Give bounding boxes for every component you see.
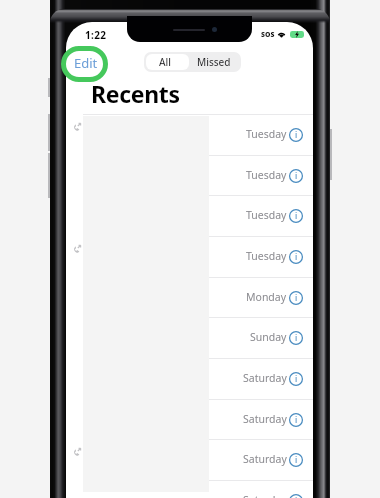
staticText: SOS [261,30,275,39]
staticText: i [295,373,298,385]
staticText: Saturday [243,412,287,426]
staticText: i [295,170,298,182]
staticText: 1:22 [85,28,107,42]
button[interactable]: Tuesday [66,155,313,196]
other: Call details [289,494,303,498]
button[interactable]: Saturday [66,480,313,498]
staticText: Edit [74,54,98,72]
staticText: i [295,292,298,304]
staticText: Saturday [243,452,287,466]
staticText: Monday [246,290,287,304]
button[interactable]: Tuesday [66,114,313,155]
staticText: Saturday [243,493,287,498]
button[interactable]: Tuesday [66,236,313,277]
staticText: Sunday [250,330,287,344]
button[interactable]: Saturday [66,358,313,399]
staticText: Tuesday [246,249,287,263]
button[interactable]: Saturday [66,399,313,440]
staticText: i [295,414,298,426]
staticText: All [159,55,171,69]
staticText: i [295,129,298,141]
other: Call details [289,209,303,223]
staticText: i [295,210,298,222]
staticText: Tuesday [246,168,287,182]
staticText: i [295,251,298,263]
other: Call details [289,453,303,467]
staticText: Saturday [243,371,287,385]
button[interactable]: Missed [189,54,239,70]
staticText: i [295,332,298,344]
staticText: Tuesday [246,208,287,222]
staticText: i [295,495,298,498]
other: Call details [289,250,303,264]
button[interactable]: Tuesday [66,195,313,236]
other: Call details [289,372,303,386]
other: Call details [289,128,303,142]
staticText: Tuesday [246,127,287,141]
other: Call details [289,291,303,305]
button[interactable]: All [146,54,189,70]
button[interactable]: Edit [68,51,104,75]
other: Call details [289,413,303,427]
button[interactable]: Sunday [66,317,313,358]
staticText: Missed [197,55,231,69]
other: Call details [289,331,303,345]
other: Call details [289,169,303,183]
button[interactable]: Saturday [66,439,313,480]
button[interactable]: Monday [66,277,313,318]
staticText: Recents [91,78,180,109]
staticText: i [295,454,298,466]
